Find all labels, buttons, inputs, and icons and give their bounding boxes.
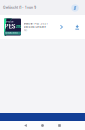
button[interactable]: Sortieren [69,0,85,14]
button[interactable]: Startbildschirm [34,121,51,130]
staticText: Gelöscht (1 - 1 von 1) [3,5,36,10]
staticText: SEASON UPDATE [5,32,18,34]
button[interactable]: Zurück [17,121,34,130]
staticText: PRO [23,29,27,32]
button[interactable]: eFootball [0,15,85,39]
button[interactable]: Übersicht [51,121,68,130]
staticText: SEASON UPDATE [23,26,45,29]
staticText: PES [5,23,16,30]
staticText: 2021 [16,24,23,29]
staticText: eFootball PES 2021 [23,22,47,25]
staticText: eFootball [6,20,15,23]
